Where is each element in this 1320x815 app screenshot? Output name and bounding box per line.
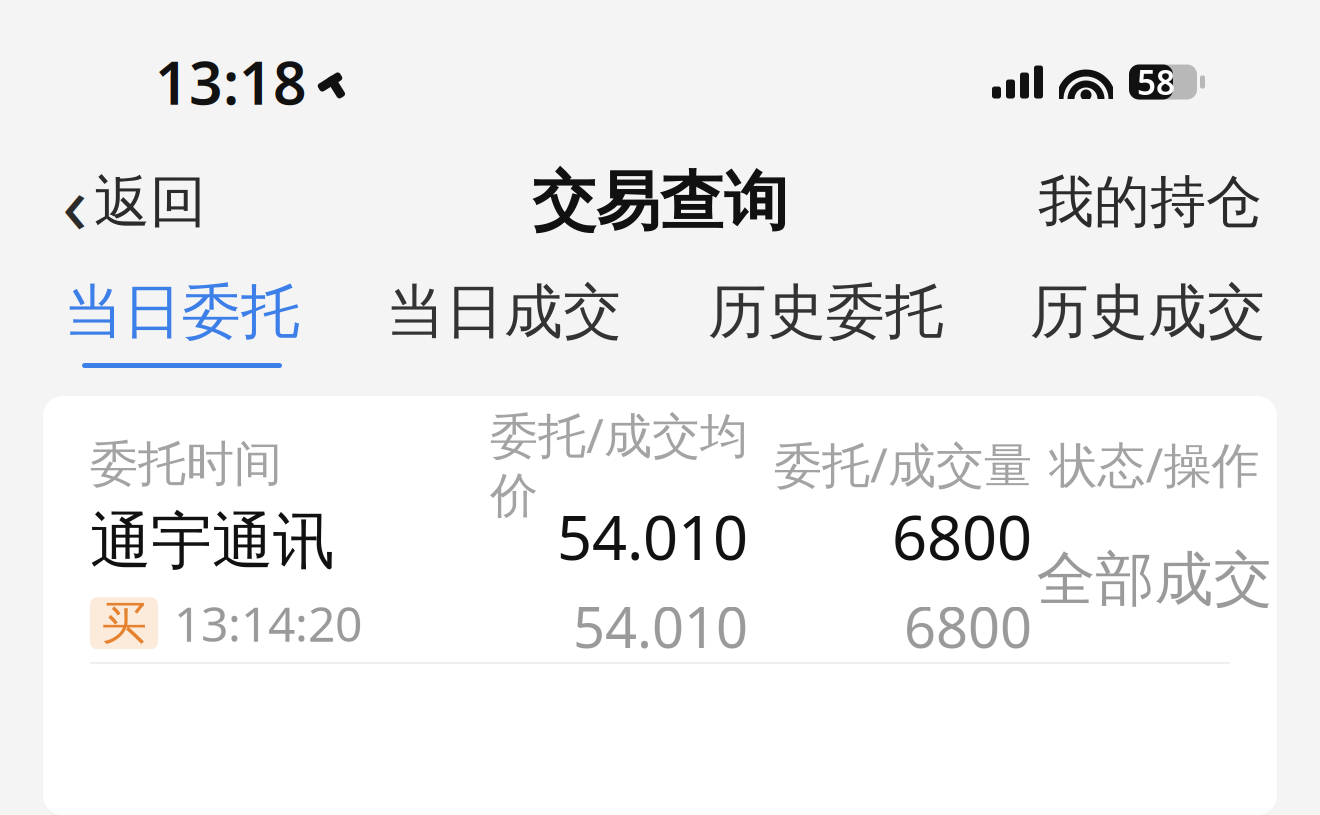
staticText: 历史委托 <box>708 276 944 348</box>
staticText: 委托/成交均价 <box>490 403 748 525</box>
staticText: 买 <box>101 595 146 651</box>
staticText: 全部成交 <box>1036 543 1272 616</box>
button[interactable]: 我的持仓 <box>1032 159 1268 245</box>
button[interactable]: 通宇通讯 <box>43 497 1277 662</box>
button[interactable]: ‹ <box>52 159 216 245</box>
staticText: 13:18 <box>155 43 307 121</box>
staticText: 委托/成交量 <box>774 432 1032 496</box>
staticText: 13:14:20 <box>174 591 362 655</box>
staticText: 当日成交 <box>386 276 622 348</box>
button[interactable]: 历史成交 <box>1030 262 1266 382</box>
staticText: 我的持仓 <box>1038 168 1262 236</box>
staticText: 返回 <box>94 168 206 236</box>
staticText: 54.010 <box>557 496 748 577</box>
button[interactable]: 当日委托 <box>64 262 300 382</box>
staticText: 58 <box>1137 60 1175 104</box>
staticText: 委托时间 <box>90 434 282 493</box>
staticText: ‹ <box>62 147 88 257</box>
staticText: 6800 <box>892 496 1032 577</box>
staticText: 当日委托 <box>64 276 300 348</box>
button[interactable]: 当日成交 <box>386 262 622 382</box>
staticText: 状态/操作 <box>1049 432 1259 496</box>
staticText: 6800 <box>904 589 1032 663</box>
staticText: 历史成交 <box>1030 276 1266 348</box>
staticText: 通宇通讯 <box>90 504 334 579</box>
staticText: 交易查询 <box>532 163 788 241</box>
staticText: 54.010 <box>573 589 748 663</box>
button[interactable]: 历史委托 <box>708 262 944 382</box>
